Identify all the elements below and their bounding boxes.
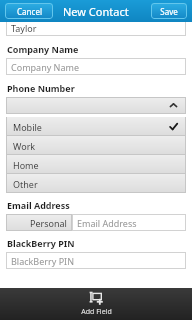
staticText: New Contact (63, 4, 129, 19)
staticText: Taylor (11, 22, 37, 34)
staticText: Personal (30, 217, 67, 229)
button[interactable]: Collapse phone number type list (6, 97, 186, 114)
button[interactable]: Personal (6, 214, 72, 231)
staticText: Other (13, 178, 38, 190)
button[interactable]: Home (6, 155, 186, 174)
button[interactable]: Taylor (6, 22, 186, 36)
button[interactable]: Mobile (6, 117, 186, 136)
button[interactable]: Work (6, 136, 186, 155)
staticText: Email Address (77, 217, 137, 229)
button[interactable]: Other (6, 174, 186, 193)
staticText: Company Name (11, 61, 80, 73)
staticText: Company Name (7, 43, 79, 55)
staticText: Mobile (13, 121, 42, 133)
button[interactable]: Company Name (6, 58, 186, 75)
staticText: Save (160, 6, 178, 17)
staticText: Home (13, 159, 39, 171)
button[interactable]: Save (151, 3, 187, 19)
staticText: Email Address (7, 199, 70, 211)
button[interactable]: BlackBerry PIN (6, 252, 186, 269)
staticText: BlackBerry PIN (7, 237, 75, 249)
staticText: BlackBerry PIN (11, 255, 74, 267)
button[interactable]: Cancel (5, 3, 53, 19)
staticText: Add Field (81, 307, 112, 317)
staticText: Cancel (17, 6, 42, 17)
button[interactable]: Add Field (0, 288, 192, 320)
staticText: Work (13, 140, 36, 152)
button[interactable]: Email Address (72, 214, 186, 231)
staticText: Phone Number (7, 82, 75, 94)
